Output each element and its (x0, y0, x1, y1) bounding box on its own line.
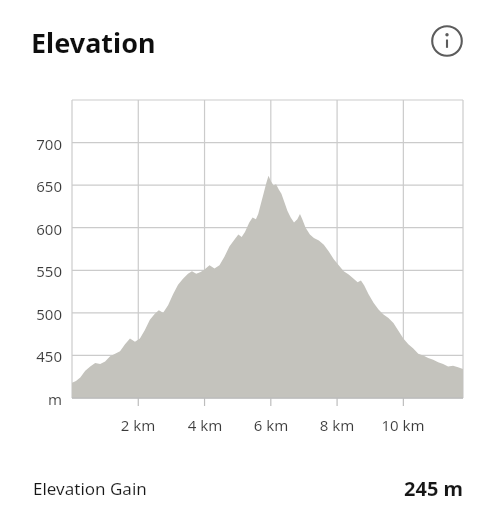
staticText: Elevation (31, 24, 156, 61)
staticText: 650 (12, 176, 62, 196)
staticText: m (12, 389, 62, 409)
staticText: 450 (12, 346, 62, 366)
staticText: 550 (12, 261, 62, 281)
staticText: 10 km (368, 415, 438, 435)
staticText: 2 km (103, 415, 173, 435)
staticText: 245 m (404, 475, 464, 502)
staticText: 6 km (236, 415, 306, 435)
staticText: 600 (12, 219, 62, 239)
staticText: Elevation Gain (33, 477, 147, 500)
staticText: 500 (12, 304, 62, 324)
staticText: 8 km (302, 415, 372, 435)
button[interactable]: Info (431, 25, 463, 57)
staticText: 700 (12, 134, 62, 154)
staticText: 4 km (170, 415, 240, 435)
